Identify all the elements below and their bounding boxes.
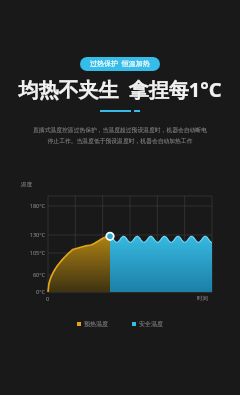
button[interactable]: 预热温度 [77,320,108,328]
staticText: 时间 [197,295,208,302]
staticText: 均热不夹生 拿捏每1°C [18,76,222,103]
staticText: 60°C [20,271,45,278]
staticText: 直插式温度控温过热保护，当温度超过预设温度时，机器会自动断电 [20,126,220,133]
staticText: 130°C [20,231,45,238]
staticText: 停止工作。当温度低于预设温度时，机器会自动加热工作 [20,137,220,144]
staticText: 过热保护 恒温加热 [90,59,150,69]
staticText: 预热温度 [84,320,108,328]
staticText: 0°C [20,288,45,295]
button[interactable]: 安全温度 [132,320,163,328]
staticText: 0 [46,295,50,302]
button[interactable]: 过热保护 恒温加热 [80,57,160,71]
staticText: 温度 [21,181,32,188]
staticText: 105°C [20,249,45,256]
staticText: 安全温度 [139,320,163,328]
staticText: 180°C [20,202,45,209]
